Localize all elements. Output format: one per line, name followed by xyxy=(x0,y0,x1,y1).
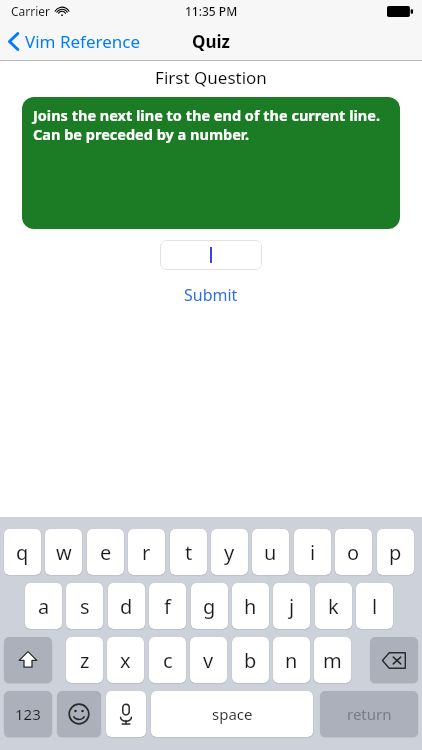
button[interactable]: Space xyxy=(151,691,313,737)
button[interactable]: x xyxy=(107,637,144,683)
button[interactable]: g xyxy=(191,583,228,629)
staticText: g xyxy=(203,593,216,620)
staticText: First Question xyxy=(0,66,422,89)
staticText: s xyxy=(80,593,90,620)
button[interactable]: c xyxy=(149,637,186,683)
button[interactable]: f xyxy=(149,583,186,629)
button[interactable]: s xyxy=(66,583,103,629)
staticText: e xyxy=(100,539,112,566)
staticText: o xyxy=(347,539,360,566)
staticText: m xyxy=(323,647,342,674)
button[interactable]: Backspace xyxy=(370,637,418,683)
staticText: v xyxy=(203,647,214,674)
staticText: w xyxy=(56,539,72,566)
button[interactable]: p xyxy=(377,529,414,575)
button[interactable]: Shift xyxy=(4,637,52,683)
button[interactable]: i xyxy=(294,529,331,575)
staticText: space xyxy=(212,704,253,724)
staticText: y xyxy=(224,539,235,566)
button[interactable]: a xyxy=(25,583,62,629)
button[interactable]: l xyxy=(356,583,393,629)
staticText: d xyxy=(120,593,133,620)
button[interactable]: j xyxy=(273,583,310,629)
button[interactable]: h xyxy=(232,583,269,629)
button[interactable]: q xyxy=(4,529,41,575)
staticText: n xyxy=(285,647,298,674)
staticText: p xyxy=(389,539,402,566)
button[interactable]: d xyxy=(108,583,145,629)
staticText: u xyxy=(264,539,277,566)
button[interactable]: u xyxy=(252,529,289,575)
button[interactable]: k xyxy=(315,583,352,629)
button[interactable]: Vim Reference xyxy=(0,26,151,57)
button[interactable]: Joins the next line to the end of the cu… xyxy=(22,97,400,229)
button[interactable]: r xyxy=(128,529,165,575)
staticText: Vim Reference xyxy=(25,30,141,53)
button[interactable]: w xyxy=(45,529,82,575)
button[interactable]: v xyxy=(190,637,227,683)
staticText: q xyxy=(16,539,29,566)
button[interactable]: n xyxy=(273,637,310,683)
staticText: f xyxy=(164,593,171,620)
staticText: c xyxy=(163,647,173,674)
staticText: Quiz xyxy=(192,30,230,53)
button[interactable]: e xyxy=(87,529,124,575)
staticText: 123 xyxy=(15,704,41,724)
button[interactable]: b xyxy=(232,637,269,683)
button[interactable] xyxy=(160,240,262,270)
staticText: h xyxy=(244,593,257,620)
button[interactable]: Return xyxy=(320,691,418,737)
staticText: Joins the next line to the end of the cu… xyxy=(33,105,389,144)
button[interactable]: t xyxy=(170,529,207,575)
staticText: b xyxy=(244,647,257,674)
staticText: l xyxy=(372,593,378,620)
staticText: r xyxy=(142,539,151,566)
staticText: return xyxy=(347,704,392,724)
staticText: i xyxy=(310,539,316,566)
staticText: Submit xyxy=(184,284,238,306)
staticText: z xyxy=(80,647,90,674)
staticText: k xyxy=(328,593,339,620)
staticText: x xyxy=(120,647,131,674)
button[interactable]: y xyxy=(211,529,248,575)
button[interactable]: z xyxy=(66,637,103,683)
button[interactable]: Emoji xyxy=(57,691,101,737)
staticText: Carrier xyxy=(11,3,51,19)
button[interactable]: o xyxy=(335,529,372,575)
button[interactable]: Submit xyxy=(170,280,252,310)
button[interactable]: Dictate xyxy=(106,691,146,737)
button[interactable]: m xyxy=(314,637,351,683)
button[interactable]: Numbers xyxy=(4,691,52,737)
staticText: 11:35 PM xyxy=(185,3,238,19)
staticText: a xyxy=(38,593,50,620)
staticText: t xyxy=(185,539,193,566)
staticText: j xyxy=(289,593,295,620)
